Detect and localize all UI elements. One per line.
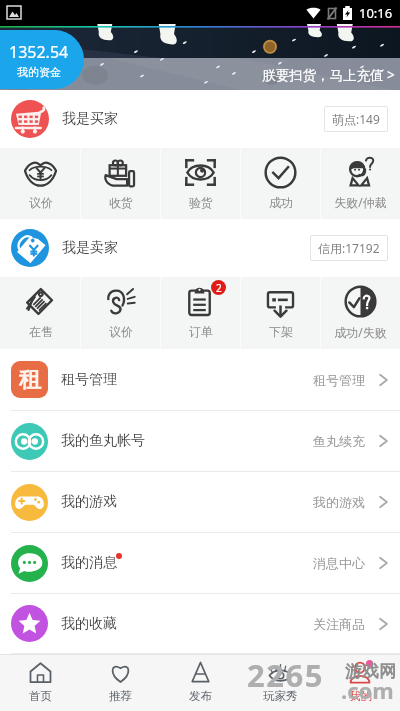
staticText: 我是卖家: [62, 239, 118, 257]
staticText: 鱼丸续充: [313, 433, 365, 449]
button[interactable]: 议价: [81, 277, 160, 349]
staticText: 下架: [269, 324, 293, 339]
button[interactable]: 租: [11, 349, 388, 410]
staticText: 萌点:149: [332, 111, 380, 127]
button[interactable]: 我的游戏: [11, 472, 388, 532]
staticText: 首页: [29, 689, 52, 703]
button[interactable]: 我的鱼丸帐号: [11, 411, 388, 471]
staticText: 1352.54: [9, 41, 69, 63]
button[interactable]: 我的收藏: [11, 594, 388, 653]
staticText: 成功: [269, 195, 293, 210]
staticText: 失败/仲裁: [334, 194, 387, 210]
staticText: 在售: [29, 324, 53, 339]
staticText: 我的游戏: [313, 494, 365, 510]
staticText: 租号管理: [61, 371, 117, 389]
button[interactable]: 我是买家: [11, 90, 388, 148]
staticText: 我的收藏: [61, 615, 117, 633]
button[interactable]: 1352.54: [0, 30, 84, 89]
staticText: 推荐: [109, 689, 132, 703]
staticText: 10:16: [359, 4, 393, 22]
button[interactable]: 我的: [320, 655, 400, 711]
button[interactable]: 首页: [0, 655, 80, 711]
staticText: 成功/失败: [334, 324, 387, 340]
staticText: 租号管理: [313, 372, 365, 388]
staticText: .com: [341, 675, 394, 705]
button[interactable]: 成功/失败: [321, 277, 400, 349]
button[interactable]: 验货: [161, 148, 240, 219]
button[interactable]: 收货: [81, 148, 160, 219]
staticText: 议价: [109, 324, 133, 339]
staticText: 验货: [189, 195, 213, 210]
staticText: 议价: [29, 195, 53, 210]
staticText: 租: [19, 366, 41, 394]
button[interactable]: 失败/仲裁: [321, 148, 400, 219]
button[interactable]: 议价: [0, 148, 80, 219]
button[interactable]: 下架: [241, 277, 320, 349]
staticText: 我的资金: [17, 65, 61, 79]
staticText: 朕要扫货，马上充值 >: [262, 66, 395, 84]
staticText: 我的鱼丸帐号: [61, 432, 145, 450]
button[interactable]: 在售: [0, 277, 80, 349]
staticText: 我的游戏: [61, 493, 117, 511]
staticText: 关注商品: [313, 616, 365, 632]
button[interactable]: 推荐: [80, 655, 160, 711]
button[interactable]: 朕要扫货，马上充值 >: [262, 66, 395, 84]
staticText: 消息中心: [313, 555, 365, 571]
button[interactable]: 我的消息: [11, 533, 388, 593]
staticText: 2: [216, 281, 222, 295]
button[interactable]: 成功: [241, 148, 320, 219]
staticText: 订单: [189, 324, 213, 339]
button[interactable]: 玩家秀: [240, 655, 320, 711]
staticText: 发布: [189, 689, 212, 703]
staticText: 玩家秀: [263, 689, 298, 703]
staticText: 信用:17192: [318, 240, 380, 256]
staticText: 我是买家: [62, 110, 118, 128]
staticText: 收货: [109, 195, 133, 210]
staticText: 我的消息: [61, 554, 117, 572]
button[interactable]: 2: [161, 277, 240, 349]
staticText: 游戏网: [345, 661, 396, 682]
staticText: 我的: [349, 689, 372, 703]
button[interactable]: 发布: [160, 655, 240, 711]
button[interactable]: 我是卖家: [11, 219, 388, 277]
staticText: 2265: [247, 654, 324, 696]
